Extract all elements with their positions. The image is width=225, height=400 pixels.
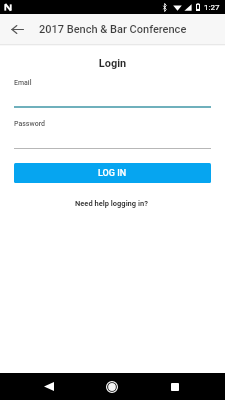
button[interactable]: Recent apps [157, 373, 193, 400]
button[interactable]: Home [94, 373, 130, 400]
button[interactable]: Need help logging in? [67, 195, 156, 212]
button[interactable]: Password [14, 117, 211, 149]
staticText: 2017 Bench & Bar Conference [39, 23, 187, 36]
staticText: 1:27 [204, 3, 220, 12]
button[interactable]: LOG IN [14, 163, 211, 183]
staticText: Need help logging in? [75, 199, 148, 208]
staticText: Email [14, 79, 32, 87]
button[interactable]: Back [31, 373, 67, 400]
staticText: Password [14, 120, 46, 128]
button[interactable]: Navigate up [0, 14, 34, 44]
button[interactable]: Email [14, 76, 211, 108]
staticText: Login [0, 57, 225, 70]
staticText: LOG IN [98, 168, 127, 179]
